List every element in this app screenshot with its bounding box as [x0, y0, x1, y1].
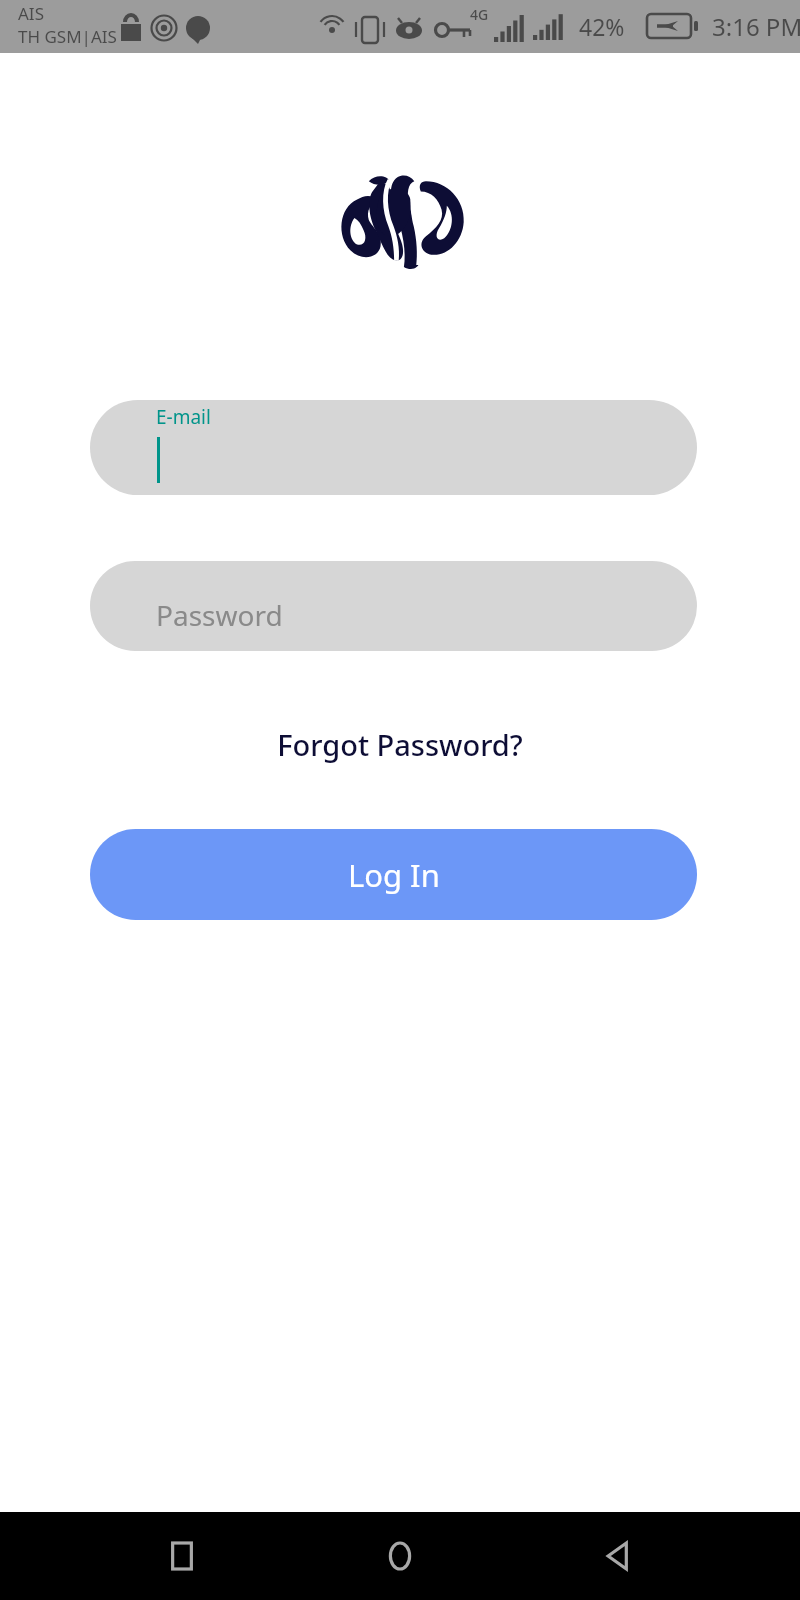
- staticText: Log In: [348, 854, 440, 896]
- button[interactable]: E-mail: [90, 400, 697, 495]
- button[interactable]: Back: [582, 1520, 654, 1592]
- staticText: TH GSM|AIS: [18, 25, 117, 48]
- staticText: Password: [156, 596, 283, 634]
- staticText: 3:16 PM: [712, 10, 800, 43]
- button[interactable]: Home: [364, 1520, 436, 1592]
- button[interactable]: Password: [90, 561, 697, 651]
- staticText: 4G: [470, 5, 489, 24]
- staticText: 42%: [579, 11, 625, 42]
- staticText: AIS: [18, 2, 44, 25]
- other: App logo: [335, 169, 465, 271]
- button[interactable]: Recent apps: [146, 1520, 218, 1592]
- staticText: E-mail: [156, 404, 211, 430]
- button[interactable]: Forgot Password?: [277, 725, 523, 764]
- button[interactable]: Log In: [90, 829, 697, 920]
- staticText: Forgot Password?: [277, 725, 523, 764]
